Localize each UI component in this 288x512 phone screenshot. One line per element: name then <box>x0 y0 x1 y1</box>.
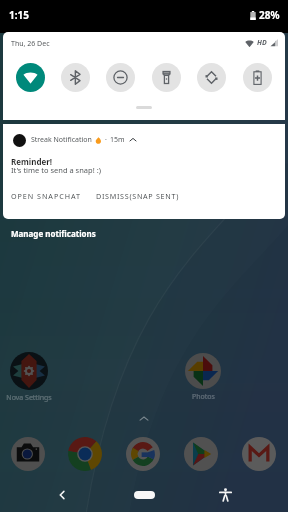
staticText: 1:15 <box>9 8 29 22</box>
button[interactable]: Google <box>125 436 161 472</box>
button[interactable]: Quick setting toggle <box>106 63 135 92</box>
button[interactable]: Home <box>134 491 155 499</box>
staticText: Photos <box>192 392 215 402</box>
staticText: It's time to send a snap! :) <box>11 165 101 175</box>
button[interactable]: Play Store <box>183 436 219 472</box>
button[interactable]: Quick setting toggle <box>16 63 45 92</box>
button[interactable]: Manage notifications <box>11 228 96 239</box>
button[interactable]: Quick setting toggle <box>152 63 181 92</box>
staticText: Thu, 26 Dec <box>11 39 50 49</box>
button[interactable]: Back <box>52 485 72 505</box>
button[interactable]: Accessibility <box>216 485 235 504</box>
button[interactable]: Quick setting toggle <box>197 63 226 92</box>
button[interactable]: Collapse notification <box>129 136 137 144</box>
staticText: 15m <box>110 135 125 145</box>
staticText: HD <box>257 38 267 48</box>
staticText: 28% <box>259 8 280 22</box>
button[interactable]: Camera <box>10 436 46 472</box>
staticText: Reminder! <box>11 156 53 167</box>
button[interactable]: DISMISS(SNAP SENT) <box>96 191 180 201</box>
button[interactable]: Quick setting toggle <box>61 63 90 92</box>
button[interactable]: Quick setting toggle <box>243 63 272 92</box>
button[interactable]: Gmail <box>241 436 277 472</box>
button[interactable]: Nova Settings <box>1 352 57 403</box>
staticText: · <box>105 135 107 145</box>
button[interactable]: Chrome <box>67 436 103 472</box>
button[interactable]: Open app drawer <box>137 412 151 426</box>
staticText: Streak Notification <box>31 135 92 145</box>
button[interactable]: Photos <box>175 353 231 402</box>
button[interactable]: OPEN SNAPCHAT <box>11 191 81 201</box>
staticText: Nova Settings <box>6 393 52 403</box>
